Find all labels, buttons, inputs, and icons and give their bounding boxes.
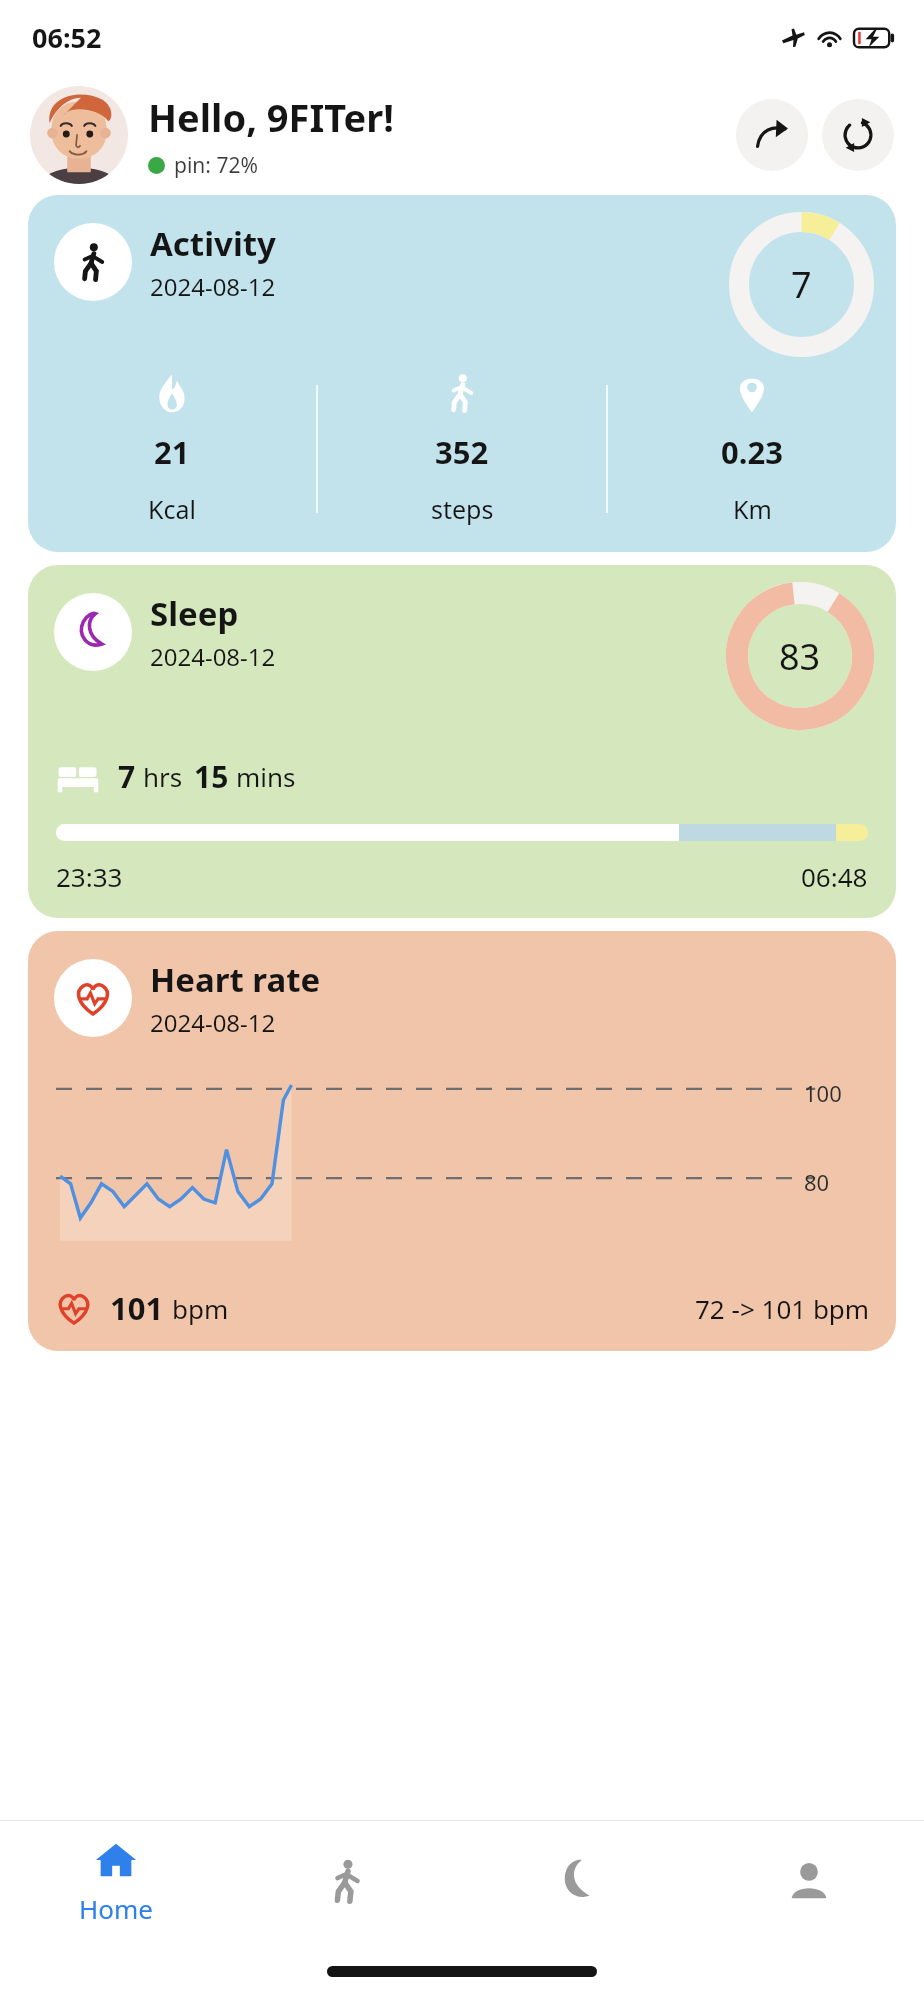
staticText: 2024-08-12 — [150, 270, 276, 303]
staticText: bpm — [172, 1291, 229, 1326]
staticText: 80 — [804, 1167, 830, 1197]
button[interactable]: Share — [736, 99, 808, 171]
staticText: 83 — [779, 632, 821, 681]
staticText: 352 — [435, 431, 489, 473]
staticText: 7 — [118, 756, 136, 797]
staticText: Sleep — [150, 591, 239, 636]
button[interactable]: Activity — [231, 1820, 462, 1942]
staticText: 101 — [110, 1287, 164, 1329]
staticText: pin: 72% — [174, 151, 258, 180]
staticText: 06:52 — [32, 19, 102, 56]
staticText: 72 -> 101 bpm — [695, 1291, 870, 1326]
staticText: 100 — [804, 1078, 842, 1108]
staticText: 21 — [154, 431, 190, 473]
staticText: Km — [733, 492, 772, 526]
staticText: 2024-08-12 — [150, 640, 276, 673]
button[interactable]: Heart rate — [28, 931, 896, 1351]
staticText: Heart rate — [150, 957, 321, 1002]
staticText: 7 — [791, 260, 812, 309]
staticText: Hello, 9FITer! — [148, 91, 394, 143]
staticText: Kcal — [148, 492, 196, 526]
staticText: mins — [236, 759, 296, 794]
button[interactable]: Sleep — [462, 1820, 693, 1942]
button[interactable]: Sleep — [28, 565, 896, 918]
staticText: steps — [431, 492, 494, 526]
staticText: 0.23 — [721, 431, 783, 473]
staticText: Home — [79, 1891, 153, 1926]
button[interactable]: Activity — [28, 195, 896, 552]
staticText: Activity — [150, 221, 276, 266]
button[interactable]: Refresh — [822, 99, 894, 171]
staticText: 06:48 — [801, 859, 868, 894]
staticText: hrs — [143, 759, 183, 794]
button[interactable]: Profile — [693, 1820, 924, 1942]
staticText: 23:33 — [56, 859, 123, 894]
staticText: 2024-08-12 — [150, 1006, 276, 1039]
staticText: 15 — [194, 756, 229, 797]
button[interactable]: Home — [0, 1820, 231, 1942]
